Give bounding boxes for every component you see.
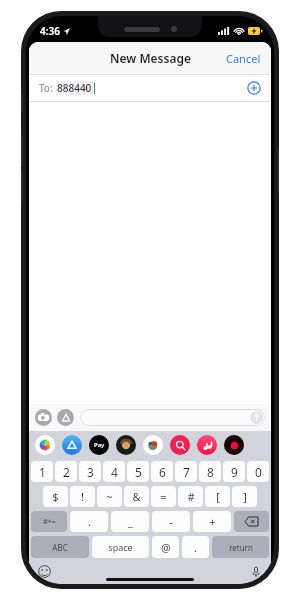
- button[interactable]: return: [212, 536, 269, 558]
- button[interactable]: App Store: [57, 409, 74, 426]
- button[interactable]: ~: [97, 486, 122, 507]
- button[interactable]: 4: [103, 461, 125, 482]
- button[interactable]: 6: [151, 461, 173, 482]
- button[interactable]: Animoji: [143, 435, 163, 455]
- button[interactable]: $: [43, 486, 68, 507]
- staticText: =: [160, 489, 167, 504]
- button[interactable]: _: [111, 511, 149, 532]
- staticText: -: [169, 514, 173, 529]
- staticText: [: [216, 489, 220, 504]
- button[interactable]: More apps: [224, 435, 244, 455]
- staticText: $: [52, 489, 59, 504]
- staticText: ~: [106, 489, 113, 504]
- button[interactable]: Cancel: [216, 45, 271, 72]
- button[interactable]: space: [92, 536, 149, 558]
- staticText: !: [81, 489, 84, 504]
- staticText: 4: [111, 464, 118, 480]
- staticText: 888440: [57, 81, 92, 95]
- button[interactable]: @: [152, 536, 179, 558]
- staticText: space: [108, 541, 133, 553]
- button[interactable]: =: [151, 486, 176, 507]
- staticText: 7: [183, 464, 190, 480]
- button[interactable]: 2: [55, 461, 77, 482]
- staticText: #+=: [43, 517, 56, 527]
- button[interactable]: Music: [197, 435, 217, 455]
- staticText: 8: [207, 464, 214, 480]
- button[interactable]: 1: [31, 461, 53, 482]
- staticText: 2: [63, 464, 70, 480]
- button[interactable]: Backspace: [234, 511, 269, 532]
- staticText: New Message: [110, 50, 191, 66]
- button[interactable]: .: [70, 511, 108, 532]
- other: Send: [250, 411, 263, 424]
- button[interactable]: &: [124, 486, 149, 507]
- staticText: Cancel: [226, 51, 261, 66]
- staticText: 3: [87, 464, 94, 480]
- button[interactable]: +: [193, 511, 231, 532]
- staticText: ]: [243, 489, 247, 504]
- staticText: To:: [39, 81, 56, 95]
- staticText: .: [88, 514, 91, 529]
- button[interactable]: #: [178, 486, 203, 507]
- staticText: return: [229, 542, 253, 553]
- staticText: Pay: [94, 441, 105, 449]
- button[interactable]: Memoji: [116, 435, 136, 455]
- staticText: _: [128, 514, 133, 529]
- button[interactable]: #+=: [31, 511, 67, 532]
- button[interactable]: .: [182, 536, 209, 558]
- button[interactable]: 3: [79, 461, 101, 482]
- button[interactable]: Apple Pay: [89, 435, 109, 455]
- staticText: 4:36: [40, 24, 60, 38]
- staticText: 9: [231, 464, 238, 480]
- button[interactable]: Send: [80, 409, 265, 426]
- button[interactable]: 8: [199, 461, 221, 482]
- staticText: 5: [135, 464, 142, 480]
- button[interactable]: ]: [232, 486, 257, 507]
- button[interactable]: ABC: [31, 536, 89, 558]
- button[interactable]: Emoji: [37, 564, 52, 579]
- button[interactable]: Dictate: [248, 564, 263, 579]
- button[interactable]: Photos: [35, 435, 55, 455]
- button[interactable]: 7: [175, 461, 197, 482]
- button[interactable]: To:: [29, 75, 271, 101]
- button[interactable]: [: [205, 486, 230, 507]
- button[interactable]: App Store: [62, 435, 82, 455]
- button[interactable]: 9: [223, 461, 245, 482]
- button[interactable]: -: [152, 511, 190, 532]
- staticText: .: [194, 540, 197, 555]
- staticText: +: [209, 514, 216, 529]
- button[interactable]: Add contact: [245, 79, 263, 97]
- staticText: @: [161, 540, 171, 555]
- button[interactable]: Camera: [35, 409, 52, 426]
- button[interactable]: !: [70, 486, 95, 507]
- button[interactable]: 0: [247, 461, 269, 482]
- staticText: ABC: [52, 542, 68, 553]
- button[interactable]: Images: [170, 435, 190, 455]
- staticText: 0: [255, 464, 262, 480]
- staticText: 1: [39, 464, 46, 480]
- button[interactable]: 5: [127, 461, 149, 482]
- staticText: &: [132, 489, 141, 504]
- staticText: 6: [159, 464, 166, 480]
- staticText: #: [187, 489, 195, 504]
